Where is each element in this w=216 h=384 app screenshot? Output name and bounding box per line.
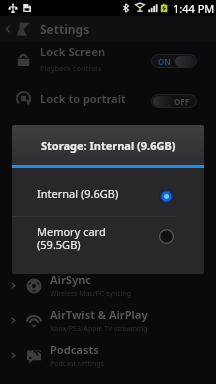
staticText: Storage: Internal (9.6GB): [41, 138, 176, 153]
other: Memory card: [159, 229, 174, 244]
button[interactable]: Lock to portrait: [0, 82, 216, 114]
button[interactable]: Internal (9.6GB): [12, 168, 204, 216]
button[interactable]: Back: [1, 22, 15, 36]
button[interactable]: Lock screen on: [151, 54, 197, 68]
staticText: Settings: [40, 21, 90, 37]
staticText: AirTwist & AirPlay: [50, 307, 148, 322]
button[interactable]: Lock Screen: [0, 42, 216, 74]
staticText: Podcast settings: [50, 359, 104, 369]
staticText: ON: [158, 56, 171, 67]
staticText: Wireless Mac/PC syncing: [50, 289, 132, 299]
staticText: OFF: [174, 96, 190, 107]
button[interactable]: Memory card (59.5GB): [12, 217, 204, 274]
staticText: 1:44 PM: [173, 1, 215, 16]
staticText: Playback controls: [40, 63, 102, 73]
button[interactable]: AirTwist & AirPlay: [0, 303, 216, 338]
staticText: Podcasts: [50, 342, 99, 357]
staticText: Xbox/PS3/Apple TV streaming: [50, 324, 148, 334]
staticText: AirSync: [50, 272, 91, 287]
staticText: Memory card (59.5GB): [37, 224, 106, 252]
staticText: Lock to portrait: [40, 91, 126, 106]
button[interactable]: AirSync: [0, 268, 216, 303]
staticText: Internal (9.6GB): [37, 186, 119, 201]
button[interactable]: Lock to portrait off: [151, 94, 197, 108]
staticText: Lock Screen: [40, 44, 106, 59]
other: Internal selected: [159, 189, 174, 204]
button[interactable]: Podcasts: [0, 338, 216, 373]
